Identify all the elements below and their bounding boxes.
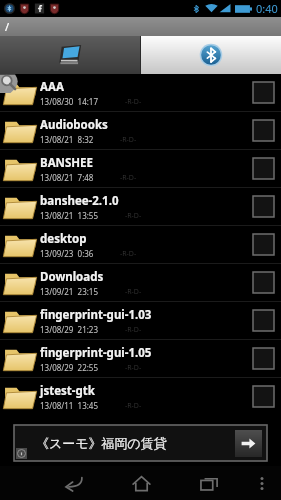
staticText: Audiobooks: [40, 117, 108, 133]
staticText: 13/08/21 13:55: [40, 210, 99, 221]
staticText: /: [5, 19, 10, 34]
staticText: 13/08/29 21:23: [40, 324, 99, 335]
staticText: 13/08/29 22:55: [40, 362, 99, 373]
staticText: jstest-gtk: [40, 383, 95, 399]
button[interactable]: Bluetooth tab: [141, 36, 281, 74]
button[interactable]: Open advertisement: [235, 430, 262, 457]
staticText: 13/09/21 23:15: [40, 286, 99, 297]
staticText: -R-D-: [120, 135, 137, 145]
button[interactable]: jstest-gtk: [0, 378, 281, 415]
button[interactable]: Select AAA: [245, 74, 281, 111]
staticText: 0:40: [256, 1, 278, 16]
staticText: desktop: [40, 231, 87, 247]
button[interactable]: 《スーモ》福岡の賃貸: [14, 425, 267, 461]
button[interactable]: Back: [40, 466, 107, 500]
button[interactable]: fingerprint-gui-1.03: [0, 302, 281, 339]
staticText: -R-D-: [120, 249, 137, 259]
button[interactable]: More options: [243, 466, 281, 500]
staticText: fingerprint-gui-1.03: [40, 307, 152, 323]
staticText: -R-D-: [125, 97, 142, 107]
staticText: 13/08/21 7:48: [40, 172, 94, 183]
staticText: -R-D-: [125, 287, 142, 297]
staticText: -R-D-: [125, 401, 142, 411]
button[interactable]: Select desktop: [245, 226, 281, 263]
staticText: Downloads: [40, 269, 104, 285]
button[interactable]: BANSHEE: [0, 150, 281, 187]
staticText: 13/08/30 14:17: [40, 96, 99, 107]
button[interactable]: Select Audiobooks: [245, 112, 281, 149]
staticText: -R-D-: [125, 363, 142, 373]
button[interactable]: Downloads: [0, 264, 281, 301]
staticText: banshee-2.1.0: [40, 193, 119, 209]
button[interactable]: Select Downloads: [245, 264, 281, 301]
button[interactable]: fingerprint-gui-1.05: [0, 340, 281, 377]
button[interactable]: Select fingerprint-gui-1.05: [245, 340, 281, 377]
button[interactable]: banshee-2.1.0: [0, 188, 281, 225]
staticText: 13/08/21 8:32: [40, 134, 94, 145]
staticText: 13/09/23 0:36: [40, 248, 94, 259]
button[interactable]: Recent apps: [175, 466, 243, 500]
staticText: fingerprint-gui-1.05: [40, 345, 152, 361]
button[interactable]: Home: [107, 466, 175, 500]
button[interactable]: Device storage tab: [0, 36, 140, 74]
staticText: 《スーモ》福岡の賃貸: [36, 435, 167, 451]
button[interactable]: Audiobooks: [0, 112, 281, 149]
button[interactable]: Select fingerprint-gui-1.03: [245, 302, 281, 339]
button[interactable]: Select BANSHEE: [245, 150, 281, 187]
staticText: 13/08/11 13:45: [40, 400, 99, 411]
button[interactable]: Select banshee-2.1.0: [245, 188, 281, 225]
button[interactable]: Select jstest-gtk: [245, 378, 281, 415]
staticText: -R-D-: [125, 325, 142, 335]
staticText: AAA: [40, 79, 64, 95]
button[interactable]: desktop: [0, 226, 281, 263]
staticText: -R-D-: [125, 211, 142, 221]
button[interactable]: AAA: [0, 74, 281, 111]
staticText: BANSHEE: [40, 155, 93, 171]
staticText: -R-D-: [120, 173, 137, 183]
